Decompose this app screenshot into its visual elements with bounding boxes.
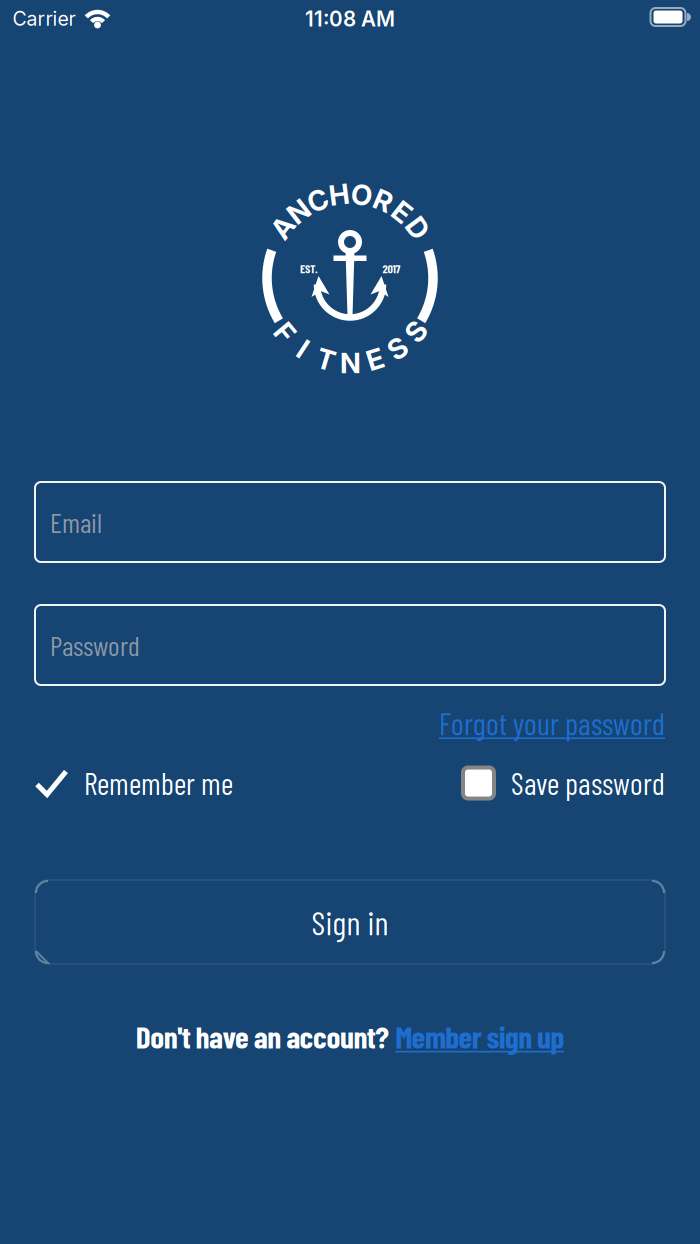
staticText: I: [299, 332, 307, 366]
button[interactable]: Password: [35, 605, 665, 685]
staticText: Carrier: [12, 7, 75, 30]
staticText: N: [288, 194, 309, 228]
staticText: Member sign up: [395, 1017, 564, 1055]
staticText: H: [329, 178, 350, 212]
staticText: N: [340, 346, 361, 380]
staticText: Remember me: [84, 765, 233, 801]
button[interactable]: Sign in: [35, 880, 665, 964]
button[interactable]: Email: [35, 482, 665, 562]
staticText: Don't have an account?: [136, 1017, 389, 1055]
staticText: D: [407, 211, 427, 245]
button[interactable]: Forgot your password: [439, 705, 665, 741]
staticText: Email: [50, 505, 102, 539]
staticText: C: [307, 183, 328, 217]
staticText: Password: [50, 628, 140, 662]
button[interactable]: Remember me: [35, 765, 233, 801]
staticText: S: [389, 331, 407, 365]
staticText: E: [394, 195, 411, 229]
staticText: Save password: [511, 765, 665, 801]
staticText: Forgot your password: [439, 705, 665, 741]
staticText: S: [407, 315, 425, 349]
button[interactable]: Save password: [463, 765, 665, 801]
staticText: 11:08 AM: [305, 6, 395, 31]
staticText: Sign in: [311, 902, 388, 942]
staticText: O: [351, 178, 372, 212]
staticText: E: [367, 342, 384, 376]
staticText: T: [317, 343, 335, 376]
button[interactable]: Member sign up: [395, 1017, 564, 1055]
staticText: EST.: [300, 261, 318, 276]
staticText: R: [374, 184, 392, 218]
staticText: A: [273, 210, 294, 244]
staticText: F: [277, 315, 293, 349]
staticText: 2017: [382, 261, 400, 276]
